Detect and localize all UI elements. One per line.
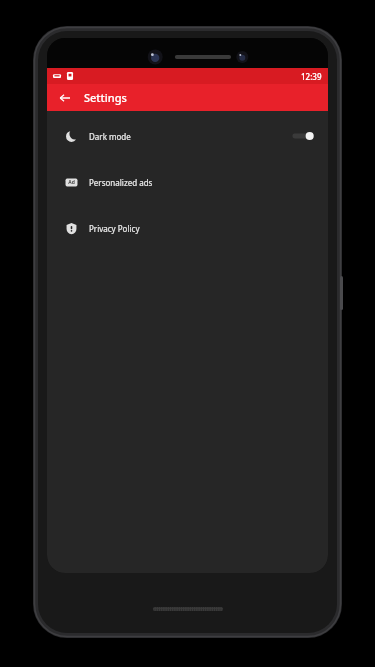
staticText: Privacy Policy xyxy=(89,223,140,234)
button[interactable]: Ad xyxy=(47,165,328,199)
staticText: 12:39 xyxy=(301,71,322,82)
staticText: Dark mode xyxy=(89,131,131,142)
button[interactable]: Dark mode toggle xyxy=(290,129,314,143)
staticText: Personalized ads xyxy=(89,177,153,188)
button[interactable]: Dark mode xyxy=(47,119,328,153)
staticText: Ad xyxy=(68,179,75,186)
button[interactable]: Privacy Policy xyxy=(47,211,328,245)
staticText: Settings xyxy=(84,90,127,105)
button[interactable]: Back xyxy=(55,88,75,108)
